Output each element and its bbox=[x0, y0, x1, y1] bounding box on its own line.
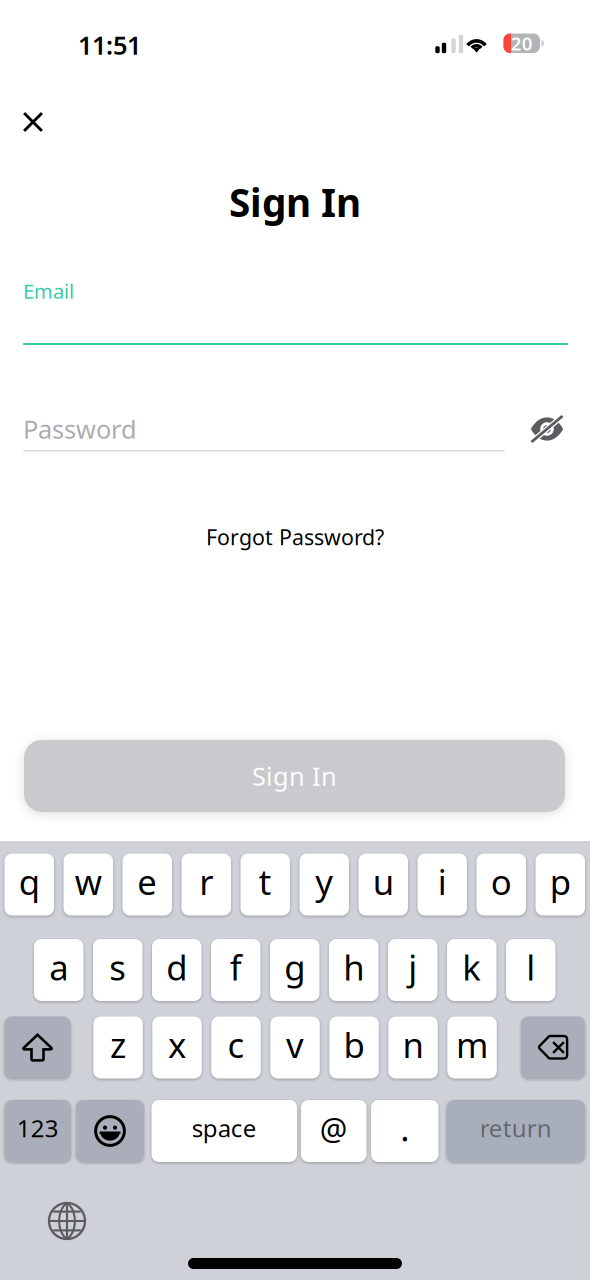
button[interactable]: c bbox=[211, 1016, 261, 1078]
button[interactable]: . bbox=[371, 1100, 438, 1162]
button[interactable]: space bbox=[151, 1100, 297, 1162]
staticText: b bbox=[344, 1021, 365, 1067]
button[interactable]: q bbox=[4, 853, 54, 915]
button[interactable]: v bbox=[270, 1016, 320, 1078]
button[interactable]: e bbox=[122, 853, 172, 915]
button[interactable]: w bbox=[63, 853, 113, 915]
button[interactable]: Close bbox=[6, 95, 60, 149]
button[interactable]: a bbox=[34, 939, 83, 1001]
staticText: v bbox=[286, 1021, 304, 1067]
staticText: z bbox=[110, 1021, 126, 1067]
staticText: @ bbox=[320, 1108, 348, 1148]
staticText: f bbox=[230, 944, 242, 990]
button[interactable]: d bbox=[152, 939, 201, 1001]
staticText: y bbox=[315, 858, 333, 904]
staticText: e bbox=[137, 858, 157, 904]
button[interactable]: return bbox=[446, 1100, 585, 1162]
staticText: i bbox=[438, 858, 447, 904]
button[interactable]: u bbox=[358, 853, 408, 915]
button[interactable]: Password bbox=[23, 408, 505, 452]
button[interactable]: n bbox=[388, 1016, 438, 1078]
button[interactable]: y bbox=[299, 853, 349, 915]
staticText: Sign In bbox=[252, 759, 337, 793]
staticText: h bbox=[343, 944, 364, 990]
button[interactable]: Next keyboard bbox=[42, 1196, 92, 1246]
button[interactable]: m bbox=[447, 1016, 497, 1078]
staticText: 123 bbox=[17, 1112, 59, 1144]
staticText: d bbox=[166, 944, 187, 990]
button[interactable]: r bbox=[181, 853, 231, 915]
staticText: u bbox=[373, 858, 394, 904]
staticText: t bbox=[259, 858, 272, 904]
button[interactable]: p bbox=[535, 853, 585, 915]
button[interactable]: k bbox=[447, 939, 496, 1001]
staticText: Sign In bbox=[229, 176, 361, 228]
button[interactable]: Email bbox=[23, 272, 568, 346]
staticText: . bbox=[400, 1105, 409, 1151]
staticText: Forgot Password? bbox=[206, 523, 384, 551]
button[interactable]: g bbox=[270, 939, 319, 1001]
button[interactable]: @ bbox=[301, 1100, 366, 1162]
staticText: c bbox=[228, 1021, 245, 1067]
button[interactable]: o bbox=[476, 853, 526, 915]
staticText: 20 bbox=[511, 31, 533, 56]
staticText: l bbox=[526, 944, 535, 990]
button[interactable]: f bbox=[211, 939, 260, 1001]
button[interactable]: z bbox=[93, 1016, 143, 1078]
button[interactable]: b bbox=[329, 1016, 379, 1078]
staticText: a bbox=[49, 944, 68, 990]
staticText: r bbox=[199, 858, 213, 904]
button[interactable]: Forgot Password? bbox=[145, 517, 445, 557]
staticText: k bbox=[462, 944, 481, 990]
button[interactable]: l bbox=[506, 939, 555, 1001]
staticText: n bbox=[403, 1021, 424, 1067]
staticText: p bbox=[550, 858, 571, 904]
button[interactable]: 123 bbox=[4, 1100, 71, 1162]
button[interactable]: h bbox=[329, 939, 378, 1001]
staticText: 11:51 bbox=[78, 28, 141, 62]
staticText: m bbox=[456, 1021, 488, 1067]
button[interactable]: s bbox=[93, 939, 142, 1001]
staticText: w bbox=[75, 858, 102, 904]
staticText: s bbox=[109, 944, 126, 990]
button[interactable]: Sign In bbox=[24, 740, 565, 812]
button[interactable]: Delete bbox=[521, 1016, 585, 1078]
staticText: space bbox=[192, 1112, 257, 1144]
staticText: o bbox=[491, 858, 512, 904]
button[interactable]: j bbox=[388, 939, 437, 1001]
staticText: Email bbox=[23, 278, 74, 304]
button[interactable]: t bbox=[240, 853, 290, 915]
staticText: q bbox=[19, 858, 40, 904]
staticText: g bbox=[284, 944, 305, 990]
button[interactable]: Show password bbox=[518, 400, 576, 458]
button[interactable]: x bbox=[152, 1016, 202, 1078]
button[interactable]: i bbox=[417, 853, 467, 915]
staticText: return bbox=[480, 1112, 552, 1144]
button[interactable]: Emoji bbox=[76, 1100, 144, 1162]
button[interactable]: Shift bbox=[4, 1016, 70, 1078]
staticText: j bbox=[408, 944, 417, 990]
staticText: x bbox=[168, 1021, 186, 1067]
staticText: Password bbox=[23, 412, 137, 446]
